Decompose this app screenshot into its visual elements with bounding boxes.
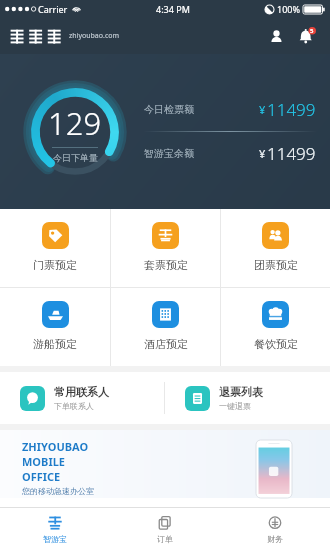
staticText: 11499 — [267, 98, 316, 121]
staticText: 11499 — [267, 142, 316, 165]
button[interactable]: Account — [261, 21, 291, 51]
staticText: 今日检票额 — [144, 103, 194, 116]
button[interactable]: 游船预定 — [0, 288, 110, 366]
staticText: 您的移动急速办公室 — [22, 486, 94, 496]
staticText: 财务 — [267, 534, 283, 544]
staticText: 100% — [277, 3, 300, 15]
staticText: 游船预定 — [33, 337, 77, 351]
staticText: 下单联系人 — [54, 401, 94, 411]
staticText: 常用联系人 — [54, 385, 109, 399]
staticText: 团票预定 — [254, 258, 298, 272]
staticText: ZHIYOUBAO — [22, 439, 89, 454]
button[interactable]: 团票预定 — [221, 209, 330, 287]
button[interactable]: Notifications — [291, 21, 321, 51]
staticText: 门票预定 — [33, 258, 77, 272]
staticText: 酒店预定 — [144, 337, 188, 351]
staticText: 今日下单量 — [53, 152, 98, 163]
button[interactable]: 酒店预定 — [111, 288, 220, 366]
staticText: 退票列表 — [219, 385, 263, 399]
staticText: 套票预定 — [144, 258, 188, 272]
button[interactable]: 财务 — [220, 508, 330, 550]
button[interactable]: 常用联系人 — [0, 372, 164, 424]
button[interactable]: 退票列表 — [165, 372, 330, 424]
button[interactable]: 订单 — [110, 508, 220, 550]
staticText: 4:34 PM — [156, 3, 190, 15]
staticText: Carrier — [38, 3, 68, 15]
staticText: 餐饮预定 — [254, 337, 298, 351]
staticText: 智游宝 — [43, 534, 67, 544]
button[interactable]: 套票预定 — [111, 209, 220, 287]
button[interactable]: 门票预定 — [0, 209, 110, 287]
button[interactable]: ZHIYOUBAO — [0, 430, 330, 498]
button[interactable]: 智游宝 — [0, 508, 110, 550]
staticText: ¥ — [259, 146, 266, 161]
staticText: OFFICE — [22, 469, 61, 484]
staticText: 智游宝余额 — [144, 147, 194, 160]
staticText: 订单 — [157, 534, 173, 544]
staticText: 5 — [310, 27, 314, 35]
staticText: MOBILE — [22, 454, 65, 469]
staticText: zhiyoubao.com — [69, 31, 120, 41]
staticText: 129 — [48, 102, 102, 144]
staticText: ¥ — [259, 102, 266, 117]
staticText: 一键退票 — [219, 401, 251, 411]
button[interactable]: 餐饮预定 — [221, 288, 330, 366]
